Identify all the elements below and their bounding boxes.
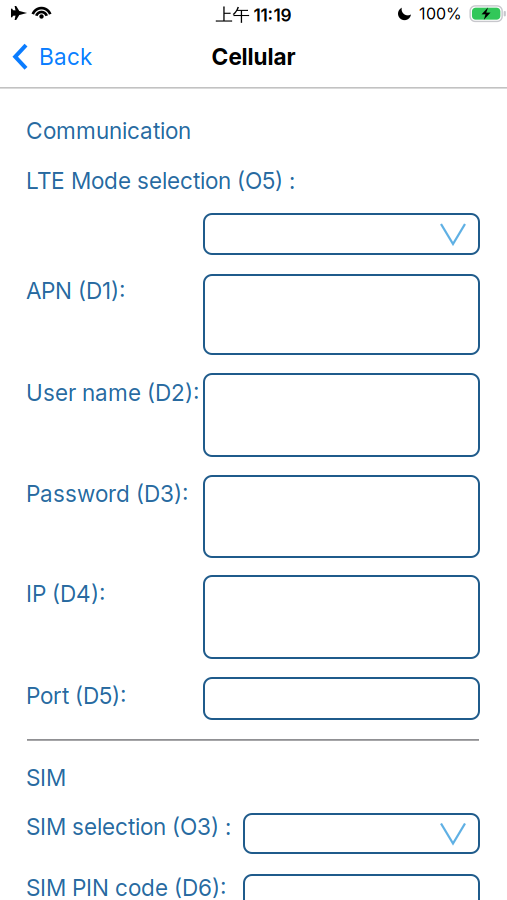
staticText: SIM selection (O3) :: [26, 813, 231, 840]
staticText: Cellular: [211, 43, 295, 70]
button[interactable]: [204, 374, 479, 456]
staticText: Back: [39, 43, 92, 70]
staticText: SIM: [26, 764, 66, 791]
button[interactable]: [204, 576, 479, 658]
button[interactable]: [204, 476, 479, 557]
button[interactable]: [204, 678, 479, 719]
staticText: IP (D4):: [26, 580, 105, 607]
staticText: 100%: [419, 4, 462, 23]
button[interactable]: [244, 875, 479, 900]
button[interactable]: [244, 814, 479, 853]
button[interactable]: [204, 275, 479, 354]
button[interactable]: [204, 214, 479, 254]
staticText: Password (D3):: [26, 480, 188, 507]
staticText: User name (D2):: [26, 379, 199, 406]
staticText: 上午 11:19: [215, 4, 291, 26]
button[interactable]: Back: [0, 35, 106, 78]
staticText: APN (D1):: [26, 277, 125, 304]
staticText: SIM PIN code (D6):: [26, 874, 226, 900]
staticText: Communication: [26, 117, 191, 144]
staticText: LTE Mode selection (O5) :: [26, 167, 295, 194]
staticText: Port (D5):: [26, 682, 126, 709]
